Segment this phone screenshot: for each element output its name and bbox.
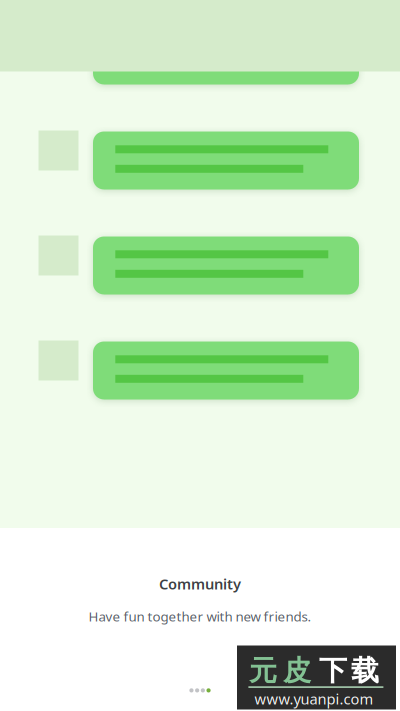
staticText: 下	[319, 653, 347, 688]
button[interactable]: Page 2	[195, 688, 199, 692]
staticText: Community	[159, 574, 241, 593]
staticText: 载	[351, 653, 379, 688]
button[interactable]: Page 4	[206, 688, 211, 692]
staticText: 元	[249, 653, 277, 688]
button[interactable]: Page 1	[189, 688, 193, 692]
staticText: www.yuanpi.com	[254, 689, 373, 708]
staticText: 皮	[283, 653, 311, 688]
button[interactable]: Page 3	[201, 688, 205, 692]
staticText: Have fun together with new friends.	[88, 607, 311, 625]
